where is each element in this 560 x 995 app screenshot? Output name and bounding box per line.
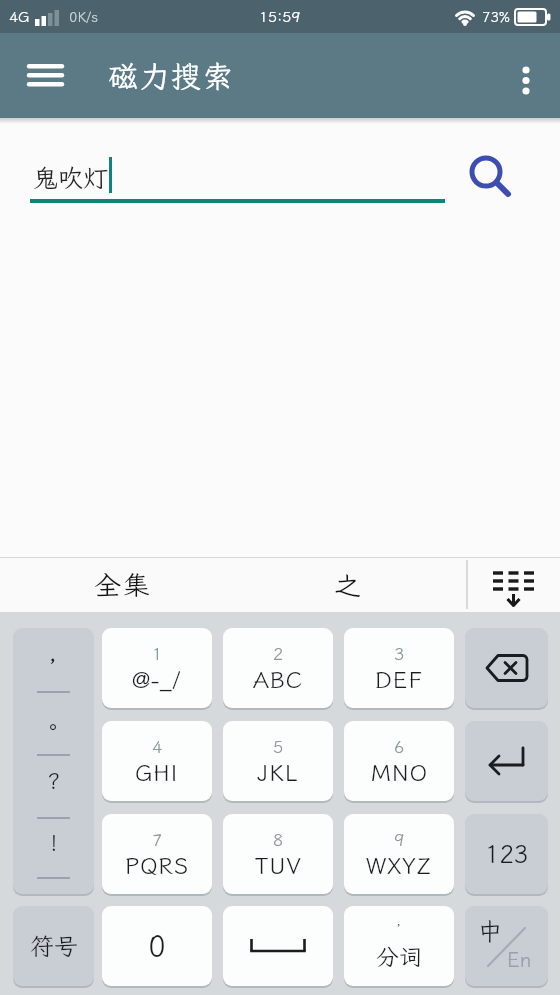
button[interactable] — [465, 628, 548, 708]
button[interactable]: 123 — [465, 814, 548, 894]
staticText: 0K/s — [69, 8, 99, 26]
button[interactable]: 4 — [102, 721, 212, 801]
button[interactable]: 1 — [102, 628, 212, 708]
button[interactable]: 7 — [102, 814, 212, 894]
staticText: 3 — [394, 642, 405, 664]
staticText: 。 — [42, 712, 65, 741]
staticText: 磁力搜索 — [108, 56, 234, 96]
staticText: 中 — [478, 915, 502, 947]
staticText: 7 — [152, 828, 163, 850]
button[interactable]: 符号 — [13, 906, 94, 986]
button[interactable]: 9 — [344, 814, 454, 894]
staticText: TUV — [255, 850, 302, 880]
staticText: 123 — [485, 838, 529, 870]
button[interactable] — [462, 148, 518, 204]
staticText: 之 — [334, 567, 361, 603]
staticText: @-_/ — [132, 664, 182, 694]
button[interactable]: 0 — [102, 906, 212, 986]
staticText: 8 — [273, 828, 284, 850]
staticText: DEF — [375, 664, 423, 694]
staticText: 1 — [152, 642, 163, 664]
staticText: En — [507, 946, 532, 972]
button[interactable] — [223, 906, 333, 986]
staticText: 2 — [273, 642, 284, 664]
button[interactable] — [18, 53, 72, 97]
staticText: PQRS — [125, 850, 190, 880]
button[interactable]: 中 — [465, 906, 548, 986]
staticText: 73% — [482, 8, 510, 26]
staticText: 6 — [394, 735, 405, 757]
button[interactable] — [468, 557, 560, 612]
staticText: 0 — [148, 926, 166, 966]
button[interactable]: 8 — [223, 814, 333, 894]
staticText: 15:59 — [259, 7, 301, 27]
button[interactable]: 2 — [223, 628, 333, 708]
staticText: ? — [47, 766, 61, 795]
staticText: MNO — [371, 757, 428, 787]
staticText: GHI — [135, 757, 179, 787]
staticText: 分词 — [376, 941, 422, 971]
button[interactable]: 3 — [344, 628, 454, 708]
button[interactable]: 6 — [344, 721, 454, 801]
staticText: 5 — [273, 735, 284, 757]
button[interactable] — [465, 721, 548, 801]
button[interactable]: ， — [13, 628, 94, 894]
button[interactable]: 5 — [223, 721, 333, 801]
button[interactable] — [506, 50, 546, 110]
staticText: ABC — [253, 664, 303, 694]
staticText: 符号 — [30, 930, 78, 962]
staticText: 4 — [152, 735, 163, 757]
staticText: ， — [42, 646, 65, 675]
staticText: 全集 — [94, 567, 152, 603]
staticText: ! — [50, 828, 58, 857]
staticText: JKL — [257, 757, 299, 787]
staticText: 4G — [9, 7, 30, 27]
staticText: 鬼吹灯 — [33, 161, 109, 194]
staticText: WXYZ — [366, 850, 432, 880]
button[interactable]: ’ — [344, 906, 454, 986]
staticText: 9 — [394, 828, 405, 850]
button[interactable]: 全集 — [70, 557, 175, 612]
staticText: ’ — [396, 921, 402, 941]
button[interactable]: 之 — [315, 557, 380, 612]
